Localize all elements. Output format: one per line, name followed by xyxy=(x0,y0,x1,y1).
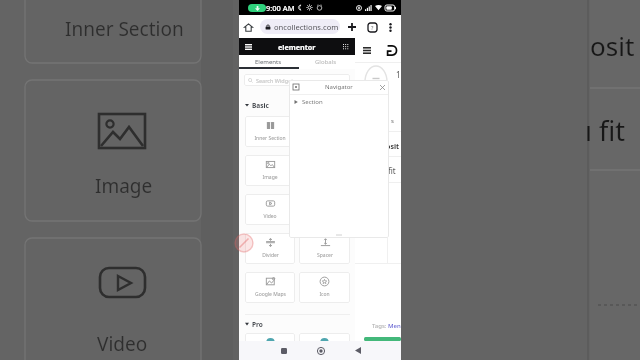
button[interactable]: Icon xyxy=(299,272,350,303)
staticText: Inner Section xyxy=(65,16,184,42)
staticText: Basic xyxy=(252,101,269,110)
button[interactable]: Video xyxy=(245,194,295,225)
button[interactable]: Image xyxy=(245,155,295,186)
button[interactable]: Menu xyxy=(243,42,253,52)
staticText: Icon xyxy=(319,291,330,298)
button[interactable]: Section xyxy=(289,95,389,108)
button[interactable]: Recent apps xyxy=(276,343,291,358)
staticText: Tags: xyxy=(372,322,387,330)
button[interactable]: Home xyxy=(313,343,328,358)
staticText: 9:00 AM xyxy=(266,3,295,13)
staticText: oncollections.com xyxy=(274,22,339,32)
button[interactable]: Search Widget... xyxy=(244,74,350,86)
staticText: Search Widget... xyxy=(256,77,298,84)
staticText: Navigator xyxy=(325,83,353,91)
button[interactable]: Basic xyxy=(245,99,355,111)
staticText: elementor xyxy=(278,42,316,52)
button[interactable]: Home xyxy=(241,20,255,34)
staticText: Inner Section xyxy=(254,135,286,142)
staticText: Elements xyxy=(255,58,282,66)
staticText: s xyxy=(391,117,394,125)
staticText: Google Maps xyxy=(255,291,286,298)
staticText: Video xyxy=(263,213,277,220)
staticText: osit xyxy=(590,28,635,63)
staticText: Globals xyxy=(315,58,337,66)
button[interactable] xyxy=(245,333,295,360)
button[interactable]: Divider xyxy=(245,233,295,264)
button[interactable]: Widgets grid xyxy=(341,42,351,52)
button[interactable]: Tabs xyxy=(366,21,378,33)
button[interactable]: Globals xyxy=(297,55,355,69)
button[interactable]: New tab xyxy=(346,21,358,33)
button[interactable]: Elements xyxy=(239,55,297,69)
button[interactable] xyxy=(299,333,350,360)
staticText: ? xyxy=(371,24,374,31)
button[interactable]: Site menu xyxy=(360,44,373,57)
staticText: Image xyxy=(262,174,278,181)
button[interactable]: Tags: xyxy=(372,322,401,330)
staticText: Video xyxy=(97,331,148,357)
button[interactable]: Buy now xyxy=(364,337,401,341)
staticText: Section xyxy=(302,98,323,106)
button[interactable]: oncollections.com xyxy=(260,19,340,34)
button[interactable]: Pro xyxy=(245,318,350,330)
button[interactable]: Close navigator xyxy=(378,83,386,91)
staticText: Image xyxy=(95,173,153,199)
staticText: Spacer xyxy=(317,252,333,259)
staticText: Divider xyxy=(262,252,279,259)
button[interactable]: Spacer xyxy=(299,233,350,264)
staticText: 1 xyxy=(396,69,401,80)
button[interactable]: Back xyxy=(350,343,365,358)
staticText: Men xyxy=(388,322,401,330)
button[interactable]: Inner Section xyxy=(245,116,295,147)
staticText: Pro xyxy=(252,320,263,329)
button[interactable]: Google Maps xyxy=(245,272,295,303)
staticText: fit xyxy=(388,165,396,176)
staticText: osit xyxy=(386,142,400,152)
staticText: ı fit xyxy=(585,112,625,149)
button[interactable]: More options xyxy=(384,21,396,33)
